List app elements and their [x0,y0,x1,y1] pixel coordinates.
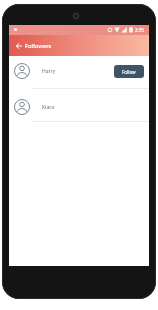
staticText: Follow [122,69,136,75]
staticText: 2:55 [135,27,144,33]
button[interactable] [9,89,149,121]
staticText: Kiara [42,104,54,111]
button[interactable] [12,38,26,53]
button[interactable]: Follow [114,65,144,78]
button[interactable] [9,56,149,88]
staticText: Harry [42,68,56,75]
staticText: Followers [25,42,52,50]
